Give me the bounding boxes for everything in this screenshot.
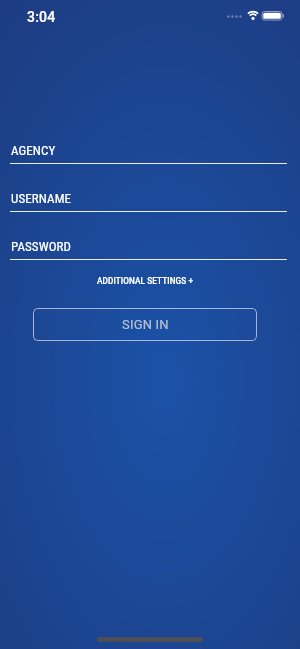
button[interactable]: PASSWORD [10, 240, 287, 260]
staticText: SIGN IN [122, 317, 169, 332]
button[interactable]: AGENCY [10, 144, 287, 164]
staticText: 3:04 [27, 9, 56, 25]
button[interactable]: USERNAME [10, 192, 287, 212]
staticText: USERNAME [11, 191, 72, 206]
button[interactable]: SIGN IN [33, 308, 257, 341]
staticText: AGENCY [11, 143, 56, 158]
staticText: ADDITIONAL SETTINGS + [97, 276, 194, 286]
staticText: PASSWORD [11, 239, 72, 254]
button[interactable]: ADDITIONAL SETTINGS + [33, 273, 257, 288]
